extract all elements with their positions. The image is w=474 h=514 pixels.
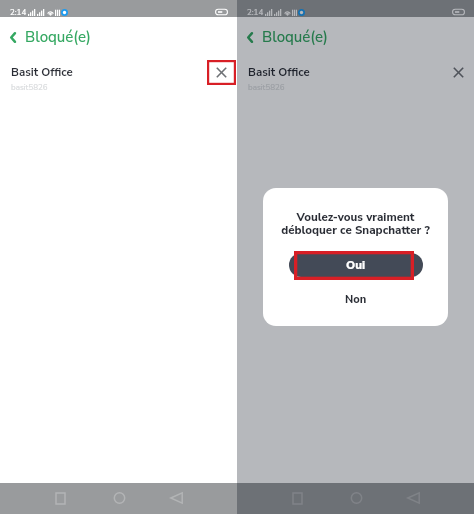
button[interactable]: Bloqué(e) xyxy=(0,17,97,57)
staticText: Basit Office xyxy=(248,64,310,80)
button[interactable]: Unblock xyxy=(446,60,470,84)
staticText: Voulez-vous vraiment débloquer ce Snapch… xyxy=(281,209,430,238)
button[interactable]: Back xyxy=(165,487,187,509)
button[interactable]: Unblock xyxy=(209,60,233,84)
button[interactable]: Bloqué(e) xyxy=(237,17,334,57)
staticText: basit5826 xyxy=(11,82,48,93)
staticText: Bloqué(e) xyxy=(262,27,328,47)
button[interactable]: Home xyxy=(345,487,367,509)
button[interactable]: Home xyxy=(108,487,130,509)
button[interactable]: Non xyxy=(335,289,377,310)
button[interactable]: Oui xyxy=(289,253,423,277)
staticText: Basit Office xyxy=(11,64,73,80)
staticText: basit5826 xyxy=(248,82,285,93)
staticText: Oui xyxy=(346,257,366,273)
button[interactable]: Back xyxy=(402,487,424,509)
staticText: 2:14 xyxy=(247,7,264,17)
button[interactable]: Recent apps xyxy=(286,487,308,509)
staticText: Bloqué(e) xyxy=(25,27,91,47)
staticText: 2:14 xyxy=(10,7,27,17)
button[interactable]: Recent apps xyxy=(49,487,71,509)
button[interactable]: Basit Office xyxy=(237,57,474,94)
staticText: Non xyxy=(345,292,367,307)
button[interactable]: Basit Office xyxy=(0,57,237,94)
